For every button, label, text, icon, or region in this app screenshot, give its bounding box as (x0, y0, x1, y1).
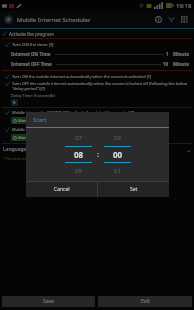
staticText: Exit (141, 298, 150, 305)
staticText: English (32, 146, 186, 153)
button[interactable]: Internet ON Time (0, 49, 194, 59)
staticText: Language (3, 146, 27, 153)
button[interactable]: Mobile internet to ALWAYS ON in the belo… (0, 109, 194, 116)
button[interactable]: Turn OFF the mobile internet automatical… (0, 80, 194, 92)
button[interactable]: English (32, 146, 190, 153)
staticText: Start (18, 118, 28, 123)
staticText: 0 (13, 100, 16, 105)
button[interactable]: Activate the program (0, 30, 194, 38)
staticText: Activate the program (9, 31, 192, 37)
staticText: Minute (173, 61, 190, 67)
staticText: Start (33, 116, 47, 124)
staticText: 1 (166, 51, 169, 57)
staticText: Save (43, 298, 54, 305)
button[interactable]: * Recommended: Configure Settings for Do… (3, 156, 191, 161)
staticText: 10 (163, 61, 169, 67)
button[interactable]: Internet OFF Time (0, 59, 194, 69)
button[interactable]: Turn ON the mobile internet automaticall… (0, 73, 194, 80)
staticText: Internet OFF Time (11, 61, 52, 67)
button[interactable]: 00 (104, 149, 131, 160)
staticText: Delay Time: 0 second(s) (11, 93, 55, 98)
button[interactable]: App icon (3, 14, 14, 25)
button[interactable]: Cancel (26, 182, 97, 197)
button[interactable]: Exit (98, 296, 192, 307)
button[interactable]: Save (2, 296, 95, 307)
staticText: 09 (65, 167, 92, 175)
button[interactable]: More options (178, 13, 191, 26)
staticText: 07 (65, 134, 92, 142)
button[interactable]: Set start time (11, 117, 30, 124)
button[interactable]: Set stop time (37, 117, 55, 124)
staticText: Cancel (54, 186, 70, 193)
staticText: Stop (44, 118, 53, 123)
staticText: Mobile internet to ALWAYS ON in the belo… (12, 110, 192, 115)
staticText: Turn ON the timer [?] (12, 42, 192, 48)
button[interactable]: Filter (165, 13, 178, 26)
staticText: 00 (104, 149, 131, 160)
staticText: Turn ON the mobile internet automaticall… (12, 74, 192, 79)
staticText: Internet ON Time (11, 51, 51, 57)
staticText: 19:18 (176, 2, 192, 10)
staticText: 01 (104, 167, 131, 175)
staticText: Minute (173, 51, 190, 57)
staticText: 08 (65, 149, 92, 160)
staticText: Mobile internet to ALWAYS OFF in the bel… (12, 127, 192, 132)
button[interactable]: Set (98, 182, 169, 197)
staticText: : (92, 150, 104, 160)
button[interactable]: 08 (65, 149, 92, 160)
staticText: Turn OFF the mobile internet automatical… (12, 81, 192, 91)
staticText: ~ (32, 118, 35, 123)
staticText: Mobile Internet Scheduler (17, 16, 152, 24)
button[interactable]: Mobile internet to ALWAYS OFF in the bel… (0, 126, 194, 133)
staticText: Start (18, 135, 28, 140)
button[interactable]: Set delay time (11, 99, 18, 106)
button[interactable]: Turn ON the timer [?] (0, 41, 194, 49)
staticText: Set (130, 186, 138, 193)
button[interactable]: Info (152, 13, 165, 26)
staticText: 59 (104, 134, 131, 142)
button[interactable]: Set off start time (11, 134, 30, 141)
